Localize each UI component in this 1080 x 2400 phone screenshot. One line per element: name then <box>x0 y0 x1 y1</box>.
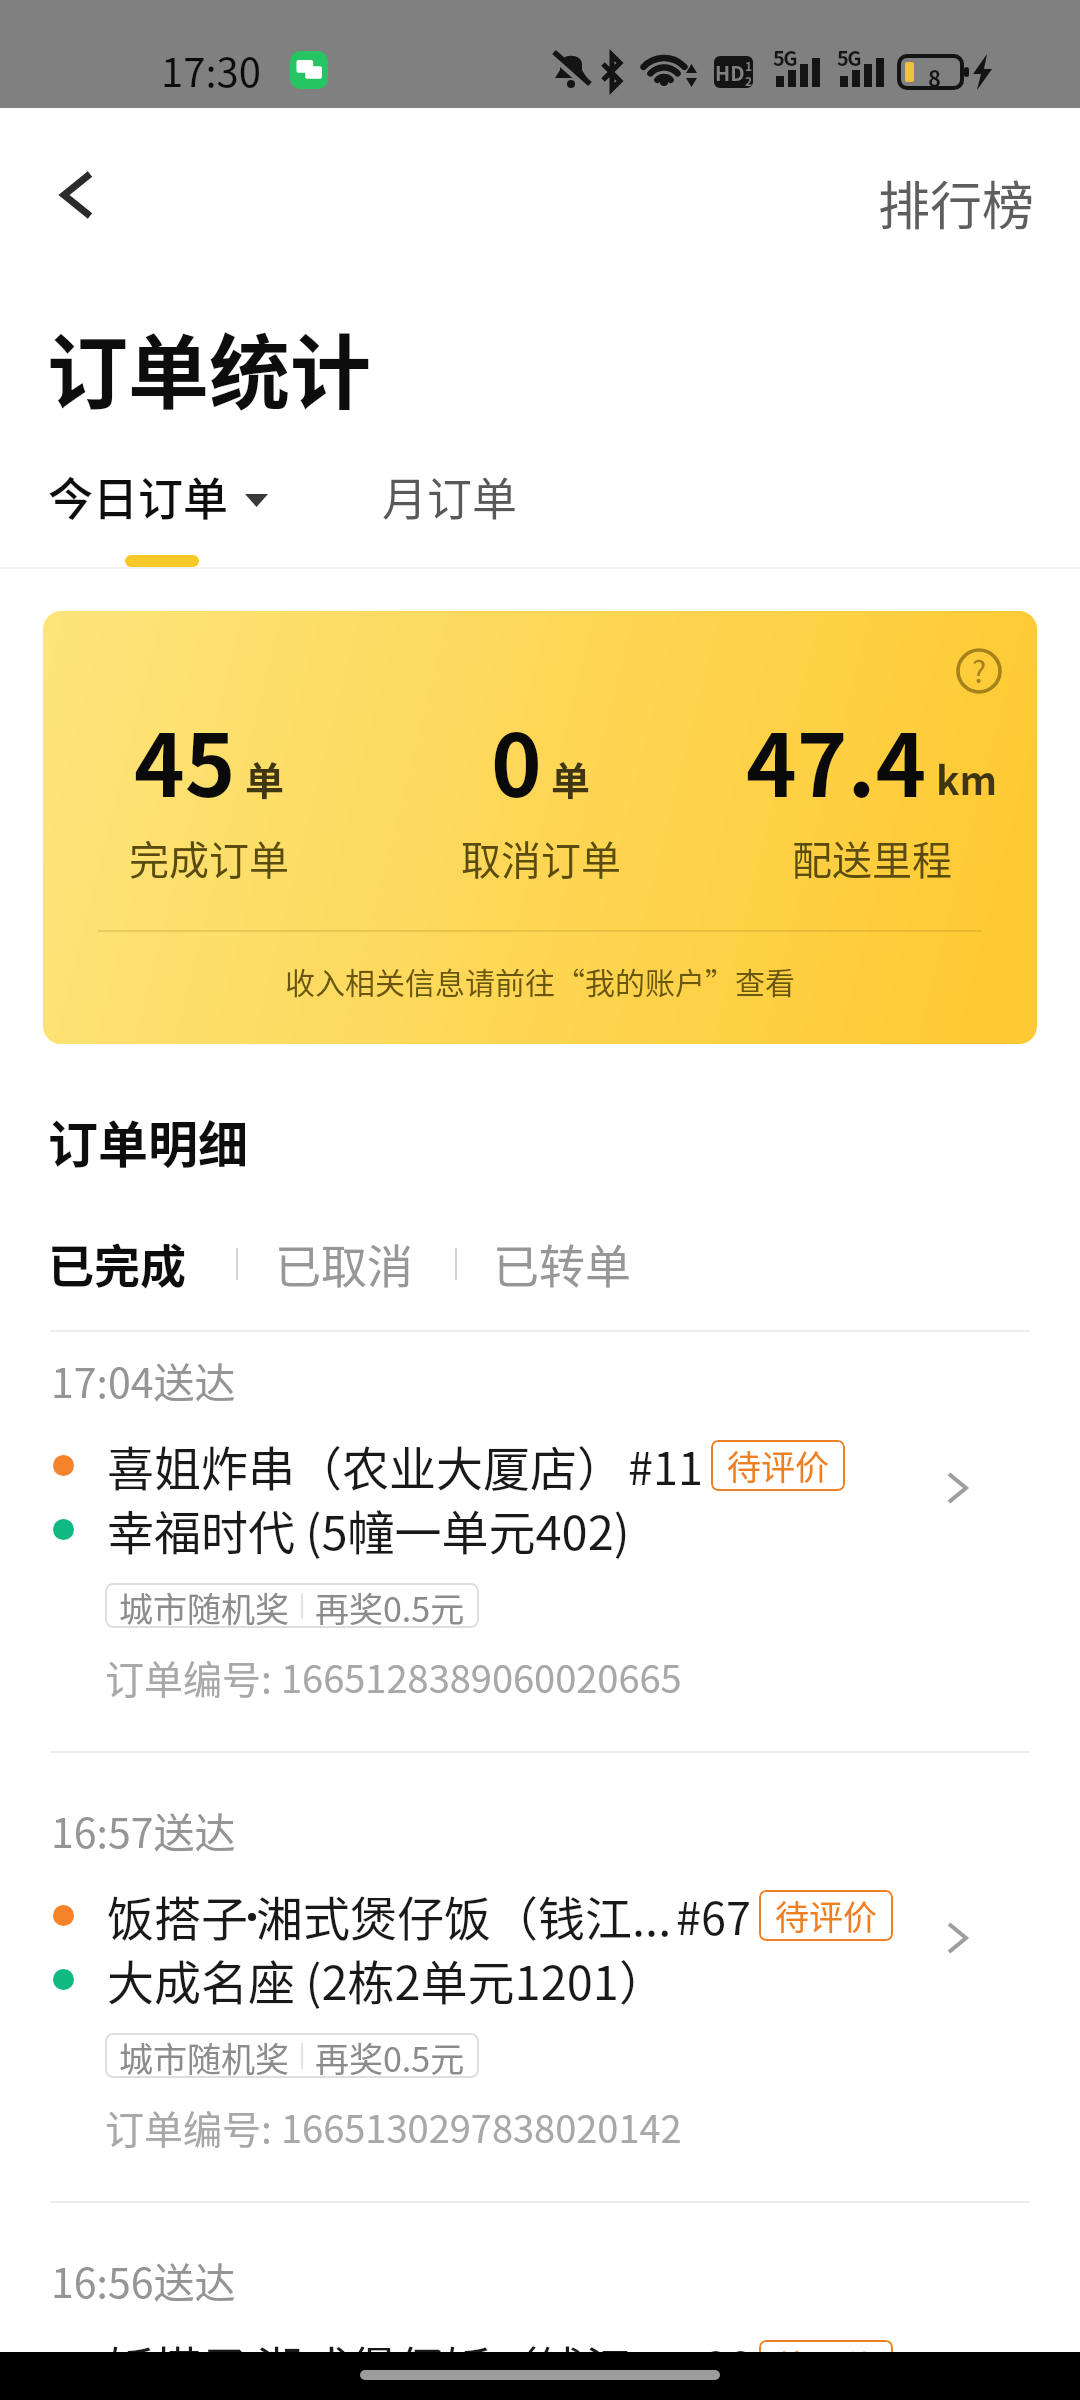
button[interactable]: 排行榜 <box>858 151 1055 254</box>
button[interactable]: Help <box>956 648 1002 694</box>
button[interactable]: Open order detail <box>930 1910 986 1966</box>
staticText: 已完成 <box>48 1230 186 1297</box>
staticText: 饭搭子 <box>107 2331 248 2399</box>
staticText: 订单明细 <box>48 1105 248 1177</box>
staticText: 配送里程 <box>792 829 952 887</box>
staticText: 8 <box>928 61 941 93</box>
staticText: 单 <box>245 750 285 806</box>
staticText: #11 <box>628 1433 703 1498</box>
button[interactable]: 16:57送达 <box>0 1782 1080 2202</box>
staticText: 1665128389060020665 <box>281 1649 682 1704</box>
staticText: 16:57送达 <box>51 1800 236 1859</box>
staticText: 已取消 <box>275 1230 413 1297</box>
staticText: ? <box>972 648 987 691</box>
button[interactable]: 已完成 <box>48 1220 186 1307</box>
staticText: 待评价 <box>775 2341 877 2390</box>
staticText: 湘式煲仔饭（钱江... <box>256 2331 672 2399</box>
button[interactable]: 今日订单 <box>48 464 274 535</box>
staticText: 大成名座 (2栋2单元1201） <box>107 1945 666 2013</box>
staticText: 收入相关信息请前往“我的账户”查看 <box>285 959 795 1002</box>
staticText: 1 <box>745 57 753 74</box>
staticText: 排行榜 <box>878 165 1035 240</box>
staticText: 取消订单 <box>461 829 621 887</box>
button[interactable]: Open order detail <box>930 1460 986 1516</box>
staticText: 5G <box>773 43 797 72</box>
button[interactable]: Back <box>34 152 120 238</box>
staticText: 0 <box>491 697 542 822</box>
staticText: 45 <box>134 697 236 822</box>
staticText: 1665130297838020142 <box>281 2099 682 2154</box>
staticText: 幸福时代 (5幢一单元402) <box>107 1495 630 1563</box>
staticText: 城市随机奖 <box>119 1583 289 1628</box>
staticText: 17:04送达 <box>51 1350 236 1409</box>
staticText: 饭搭子 <box>107 1881 248 1949</box>
staticText: 17:30 <box>161 41 261 99</box>
staticText: 待评价 <box>727 1441 829 1490</box>
button[interactable]: 月订单 <box>382 464 524 535</box>
staticText: 5G <box>837 43 861 72</box>
staticText: 2 <box>745 72 753 87</box>
staticText: 再奖0.5元 <box>315 2033 465 2078</box>
staticText: 已转单 <box>493 1230 631 1297</box>
staticText: 待评价 <box>775 1891 877 1940</box>
staticText: 16:56送达 <box>51 2250 236 2309</box>
staticText: 城市随机奖 <box>119 2033 289 2078</box>
button[interactable]: 16:56送达 <box>0 2232 1080 2400</box>
staticText: 订单统计 <box>47 308 372 425</box>
staticText: #67 <box>676 1883 751 1948</box>
staticText: 月订单 <box>382 464 518 529</box>
staticText: 再奖0.5元 <box>315 1583 465 1628</box>
staticText: 订单编号: <box>105 2099 281 2155</box>
staticText: HD <box>715 58 745 87</box>
staticText: 47.4 <box>746 697 927 822</box>
button[interactable]: Help <box>43 611 1037 1044</box>
staticText: 今日订单 <box>48 464 229 529</box>
staticText: 订单编号: <box>105 1649 281 1705</box>
staticText: 喜姐炸串（农业大厦店） <box>107 1431 624 1499</box>
staticText: 完成订单 <box>129 829 289 887</box>
button[interactable]: 17:04送达 <box>0 1332 1080 1752</box>
staticText: 单 <box>551 750 591 806</box>
staticText: km <box>936 750 998 806</box>
button[interactable]: 已转单 <box>493 1220 631 1307</box>
staticText: 湘式煲仔饭（钱江... <box>256 1881 672 1949</box>
staticText: #66 <box>676 2333 751 2398</box>
button[interactable]: 已取消 <box>275 1220 413 1307</box>
